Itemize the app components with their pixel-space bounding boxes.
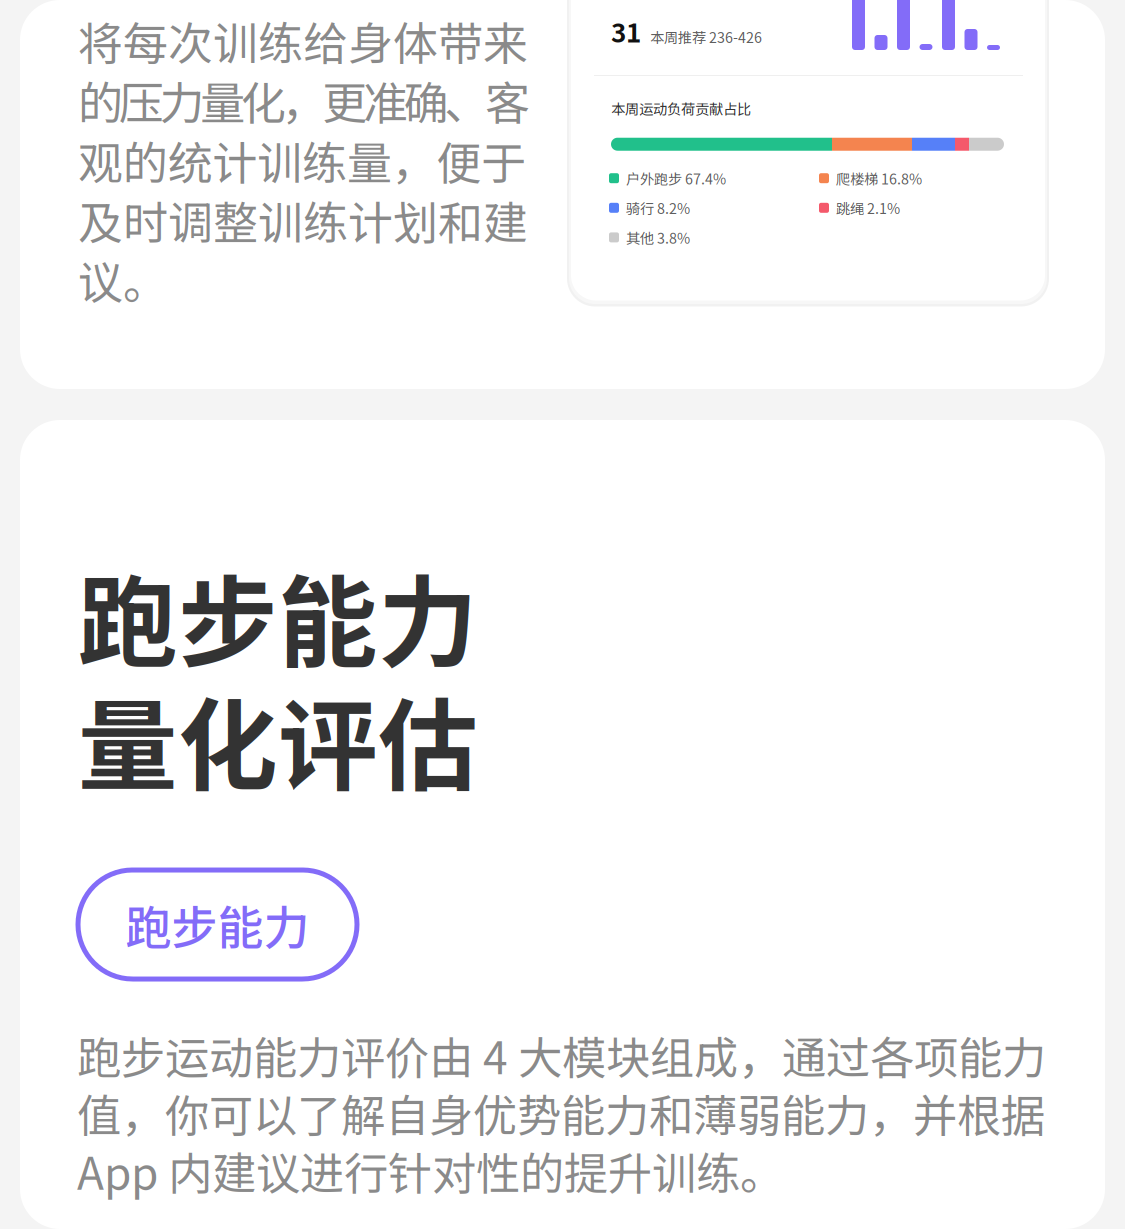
staticText: 户外跑步 67.4% xyxy=(626,170,726,186)
staticText: 议。 xyxy=(78,250,168,309)
staticText: 跑步运动能力评价由 4 大模块组成，通过各项能力值，你可以了解自身优势能力和薄弱… xyxy=(77,1026,1046,1199)
button[interactable]: 跑步能力 xyxy=(78,870,357,979)
staticText: 跑步能力 xyxy=(125,891,309,958)
staticText: 的压力量化，更准确、客 xyxy=(78,71,530,129)
staticText: 跑步能力 量化评估 xyxy=(78,554,478,800)
staticText: 将每次训练给身体带来 xyxy=(78,11,528,70)
staticText: 本周推荐 236-426 xyxy=(650,26,762,47)
staticText: 31 xyxy=(611,12,641,50)
staticText: 其他 3.8% xyxy=(626,229,690,245)
staticText: 及时调整训练计划和建 xyxy=(78,190,528,249)
staticText: 观的统计训练量，便于 xyxy=(78,131,526,189)
staticText: 爬楼梯 16.8% xyxy=(836,170,922,186)
staticText: 本周运动负荷贡献占比 xyxy=(611,98,751,119)
staticText: 跳绳 2.1% xyxy=(836,200,900,216)
staticText: 骑行 8.2% xyxy=(626,200,690,216)
